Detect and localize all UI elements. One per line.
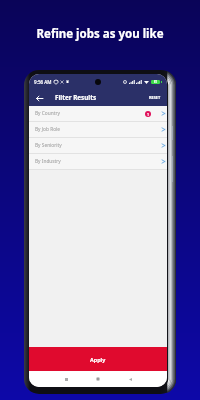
staticText: Apply xyxy=(90,356,106,363)
button[interactable]: Recents xyxy=(61,374,71,384)
staticText: Filter Results xyxy=(55,93,97,102)
staticText: RESET xyxy=(149,95,161,100)
staticText: 81 xyxy=(154,80,157,84)
button[interactable]: By Job Role xyxy=(29,122,167,138)
button[interactable]: By Country xyxy=(29,106,167,122)
staticText: By Industry xyxy=(35,158,61,165)
staticText: By Country xyxy=(35,110,60,117)
button[interactable]: By Industry xyxy=(29,154,167,170)
staticText: By Job Role xyxy=(35,126,61,133)
staticText: By Seniority xyxy=(35,142,62,149)
button[interactable]: RESET xyxy=(146,92,164,103)
button[interactable]: Apply xyxy=(29,347,167,371)
button[interactable]: Back xyxy=(32,91,46,105)
staticText: 9:56 AM xyxy=(34,79,52,85)
staticText: Refine jobs as you like xyxy=(0,26,200,42)
button[interactable]: Home xyxy=(93,374,103,384)
button[interactable]: Back xyxy=(125,374,135,384)
staticText: 1 xyxy=(147,112,149,117)
button[interactable]: By Seniority xyxy=(29,138,167,154)
